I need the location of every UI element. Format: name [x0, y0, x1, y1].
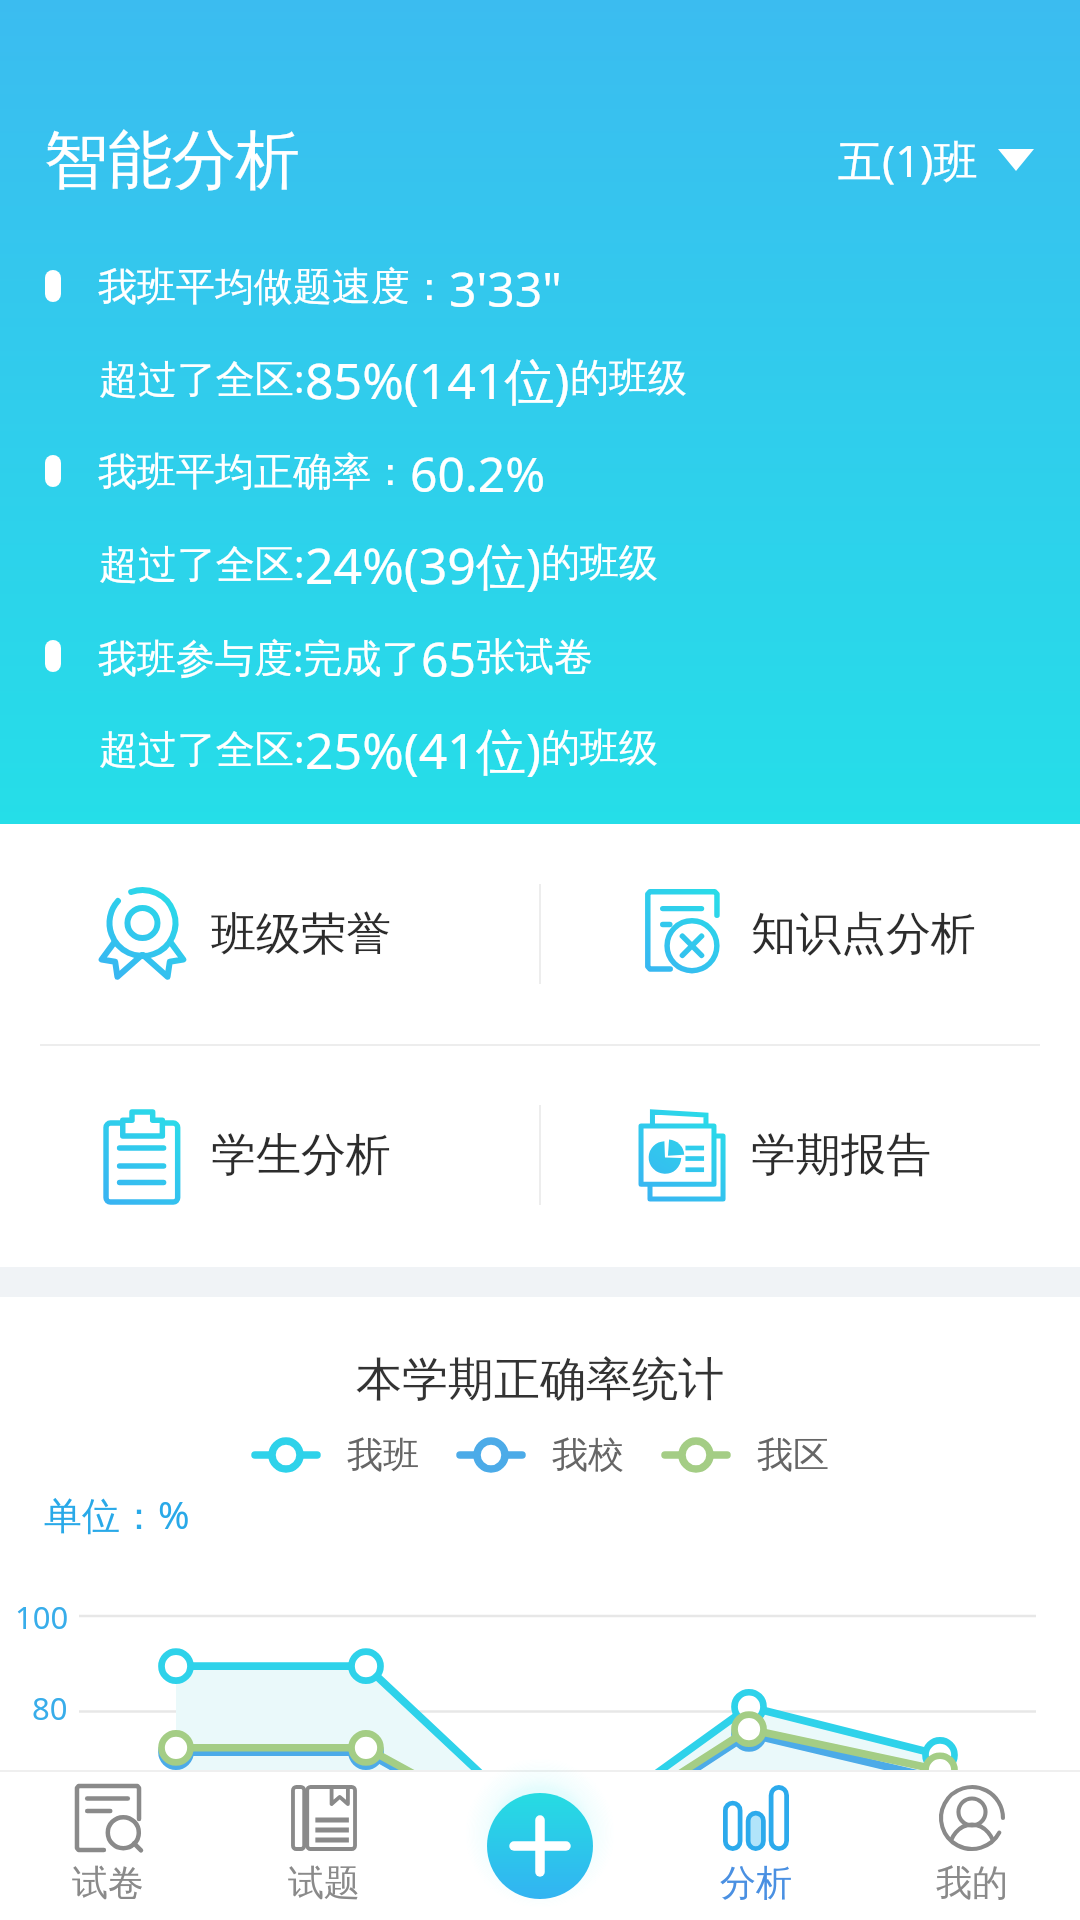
button[interactable]: 分析: [648, 1770, 864, 1920]
staticText: 60.2%: [410, 441, 546, 501]
staticText: 试卷: [72, 1860, 144, 1905]
button[interactable]: 试题: [216, 1770, 432, 1920]
staticText: 超过了全区:: [99, 351, 305, 404]
button[interactable]: 学期报告: [540, 1044, 1080, 1267]
staticText: 张试卷: [476, 632, 593, 681]
button[interactable]: 班级荣誉: [0, 824, 540, 1044]
button[interactable]: 我的: [864, 1770, 1080, 1920]
staticText: 80: [32, 1687, 68, 1729]
staticText: 85%(141位): [305, 346, 570, 408]
staticText: 知识点分析: [751, 906, 976, 963]
staticText: 25%(41位): [305, 716, 541, 778]
staticText: 试题: [288, 1860, 360, 1905]
staticText: 65: [421, 626, 476, 686]
staticText: 的班级: [570, 353, 687, 402]
staticText: 本学期正确率统计: [0, 1351, 1080, 1409]
staticText: 超过了全区:: [99, 721, 305, 774]
staticText: 五(1)班: [838, 130, 978, 190]
staticText: 我的: [936, 1860, 1008, 1905]
staticText: 24%(39位): [305, 531, 541, 593]
button[interactable]: 知识点分析: [540, 824, 1080, 1044]
staticText: 我区: [757, 1432, 829, 1477]
staticText: 100: [15, 1596, 69, 1638]
staticText: 的班级: [541, 538, 658, 587]
staticText: 学期报告: [751, 1127, 931, 1184]
staticText: 3'33": [449, 256, 562, 316]
staticText: 我班平均正确率：: [98, 447, 410, 496]
staticText: 的班级: [541, 723, 658, 772]
button[interactable]: 我校: [457, 1432, 624, 1477]
staticText: 班级荣誉: [211, 906, 391, 963]
staticText: 我班平均做题速度：: [98, 262, 449, 311]
staticText: 单位：%: [44, 1488, 190, 1540]
staticText: 智能分析: [44, 120, 300, 201]
staticText: 超过了全区:: [99, 536, 305, 589]
button[interactable]: 五(1)班: [832, 124, 1040, 196]
button[interactable]: 我区: [662, 1432, 829, 1477]
button[interactable]: Add: [487, 1793, 593, 1899]
button[interactable]: 学生分析: [0, 1044, 540, 1267]
button[interactable]: 试卷: [0, 1770, 216, 1920]
staticText: 分析: [720, 1860, 792, 1905]
button[interactable]: 我班: [252, 1432, 419, 1477]
staticText: 学生分析: [211, 1127, 391, 1184]
staticText: 我班: [347, 1432, 419, 1477]
staticText: 我校: [552, 1432, 624, 1477]
staticText: 我班参与度:完成了: [98, 630, 421, 683]
